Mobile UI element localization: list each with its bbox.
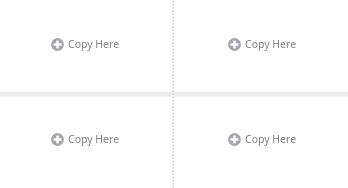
- staticText: Copy Here: [245, 37, 297, 51]
- button[interactable]: Add content here: [174, 0, 348, 94]
- other: Add content here: [228, 133, 241, 146]
- other: Add content here: [51, 38, 64, 51]
- button[interactable]: Add content here: [0, 94, 174, 188]
- button[interactable]: Add content here: [174, 94, 348, 188]
- staticText: Copy Here: [245, 132, 297, 146]
- other: Add content here: [228, 38, 241, 51]
- other: Add content here: [51, 133, 64, 146]
- staticText: Copy Here: [68, 37, 120, 51]
- staticText: Copy Here: [68, 132, 120, 146]
- button[interactable]: Add content here: [0, 0, 174, 94]
